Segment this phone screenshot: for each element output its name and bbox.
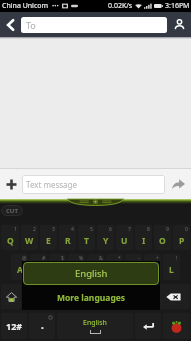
staticText: 3 (52, 226, 55, 233)
button[interactable]: ) (42, 284, 59, 309)
button[interactable]: ? (118, 284, 135, 309)
button[interactable]: 4 (59, 225, 76, 250)
button[interactable]: 3 (40, 225, 57, 250)
staticText: P (179, 235, 185, 247)
other: Enter (143, 322, 154, 331)
staticText: - (138, 255, 140, 262)
staticText: O (159, 235, 166, 247)
staticText: N (123, 294, 130, 306)
button[interactable]: 0 (173, 225, 190, 250)
button[interactable]: / (99, 284, 116, 309)
button[interactable]: @ (11, 254, 28, 280)
button[interactable]: Add attachment (0, 169, 22, 199)
button[interactable]: Shift (1, 284, 21, 309)
staticText: V (86, 294, 92, 306)
staticText: ! (176, 255, 178, 262)
button[interactable]: % (68, 254, 85, 280)
button[interactable]: 1 (1, 225, 19, 250)
staticText: R (65, 235, 71, 247)
staticText: W (25, 235, 34, 247)
button[interactable]: 12# (1, 313, 27, 339)
button[interactable]: # (30, 254, 47, 280)
button[interactable]: - (125, 254, 142, 280)
other: Emoji (170, 320, 183, 333)
button[interactable]: 5 (78, 225, 95, 250)
staticText: B (105, 294, 111, 306)
staticText: I (142, 235, 146, 247)
button[interactable]: English (57, 313, 133, 339)
staticText: More languages (57, 292, 126, 304)
staticText: # (42, 255, 46, 262)
staticText: & (99, 255, 103, 262)
staticText: A (17, 264, 23, 276)
button[interactable]: . (29, 313, 55, 339)
staticText: China Unicom (2, 1, 49, 11)
button[interactable]: Choose contact (167, 12, 191, 37)
button[interactable]: & (87, 254, 104, 280)
staticText: English (83, 318, 107, 328)
staticText: 5 (90, 226, 93, 233)
button[interactable]: 6 (97, 225, 114, 250)
button[interactable]: $ (49, 254, 66, 280)
button[interactable]: 8 (135, 225, 152, 250)
button[interactable]: ! (163, 254, 180, 280)
staticText: . (41, 318, 44, 332)
button[interactable]: 9 (154, 225, 171, 250)
staticText: 9 (166, 226, 169, 233)
button[interactable]: ( (23, 284, 40, 309)
button[interactable]: + (144, 254, 161, 280)
staticText: 8 (147, 226, 150, 233)
button[interactable]: CUT (1, 205, 23, 216)
staticText: CUT (6, 207, 18, 215)
staticText: 6 (109, 226, 112, 233)
staticText: % (79, 255, 84, 262)
button[interactable]: Back (0, 12, 21, 37)
button[interactable]: * (106, 254, 123, 280)
staticText: 1 (14, 226, 17, 233)
staticText: T (84, 235, 89, 247)
staticText: E (46, 235, 51, 247)
button[interactable]: 2 (21, 225, 38, 250)
staticText: Y (103, 235, 109, 247)
staticText: U (121, 235, 128, 247)
staticText: @ (22, 255, 27, 262)
button[interactable]: Emoji (163, 313, 190, 339)
staticText: + (156, 255, 159, 262)
button[interactable]: Send message (165, 169, 191, 199)
staticText: To (26, 19, 36, 31)
button[interactable]: Text message (22, 175, 165, 194)
button[interactable]: , (137, 284, 154, 309)
button[interactable]: Enter (135, 313, 161, 339)
button[interactable]: 7 (116, 225, 133, 250)
button[interactable]: English (23, 262, 159, 285)
staticText: * (118, 255, 121, 262)
staticText: ••• (52, 2, 59, 10)
button[interactable]: ; (80, 284, 97, 309)
staticText: English (75, 267, 108, 280)
staticText: 0.02K/s (108, 1, 133, 11)
button[interactable]: Backspace (156, 284, 190, 309)
staticText: F (74, 264, 79, 276)
staticText: 4 (71, 226, 74, 233)
staticText: 7 (128, 226, 131, 233)
staticText: Q (7, 235, 14, 247)
button[interactable]: : (61, 284, 78, 309)
staticText: 0 (185, 226, 188, 233)
staticText: 2 (33, 226, 36, 233)
button[interactable]: More languages (22, 286, 160, 310)
button[interactable]: To (21, 17, 167, 33)
staticText: Text message (26, 179, 78, 190)
other: Shift (6, 292, 17, 302)
